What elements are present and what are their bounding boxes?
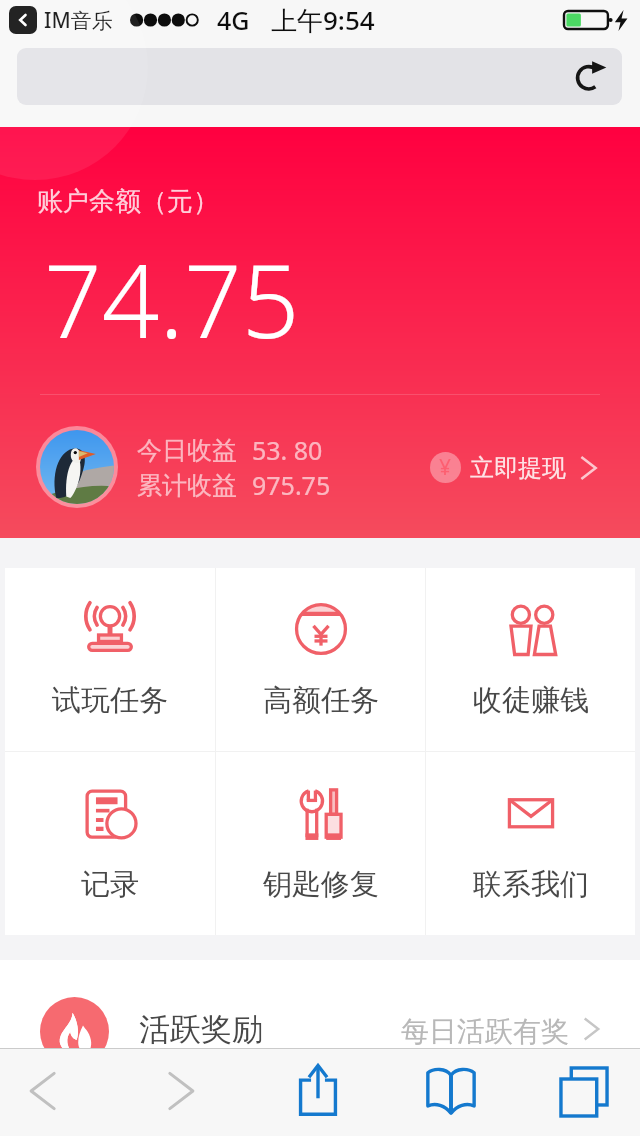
- staticText: 53. 80: [252, 433, 323, 467]
- staticText: 高额任务: [263, 682, 379, 719]
- staticText: 每日活跃有奖: [401, 1014, 569, 1049]
- button[interactable]: 收徒赚钱: [426, 568, 635, 751]
- staticText: ¥: [439, 453, 452, 482]
- staticText: 74.75: [44, 230, 300, 368]
- button[interactable]: Back to IM音乐: [9, 6, 37, 34]
- staticText: 立即提现: [470, 453, 566, 483]
- button[interactable]: Forward: [145, 1048, 219, 1134]
- button[interactable]: Bookmarks: [414, 1048, 488, 1134]
- staticText: 活跃奖励: [139, 1010, 263, 1049]
- button[interactable]: Reload page: [568, 54, 613, 99]
- button[interactable]: 钥匙修复: [216, 752, 425, 935]
- button[interactable]: Back: [5, 1048, 79, 1134]
- staticText: 联系我们: [473, 866, 589, 903]
- button[interactable]: 记录: [5, 752, 215, 935]
- staticText: IM音乐: [44, 6, 113, 35]
- button[interactable]: 试玩任务: [5, 568, 215, 751]
- button[interactable]: 联系我们: [426, 752, 635, 935]
- staticText: 试玩任务: [52, 682, 168, 719]
- staticText: 975.75: [252, 468, 331, 502]
- staticText: 累计收益: [137, 470, 237, 501]
- button[interactable]: [17, 48, 622, 105]
- staticText: 账户余额（元）: [37, 185, 219, 218]
- button[interactable]: 活跃奖励: [0, 960, 640, 1048]
- button[interactable]: 高额任务: [216, 568, 425, 751]
- staticText: 上午9:54: [271, 2, 375, 38]
- staticText: 今日收益: [137, 435, 237, 466]
- staticText: 记录: [81, 866, 139, 903]
- staticText: 钥匙修复: [263, 866, 379, 903]
- button[interactable]: Tabs: [547, 1048, 621, 1134]
- staticText: 4G: [217, 3, 250, 37]
- staticText: 收徒赚钱: [473, 682, 589, 719]
- button[interactable]: ¥: [430, 452, 597, 483]
- button[interactable]: Share: [281, 1048, 355, 1134]
